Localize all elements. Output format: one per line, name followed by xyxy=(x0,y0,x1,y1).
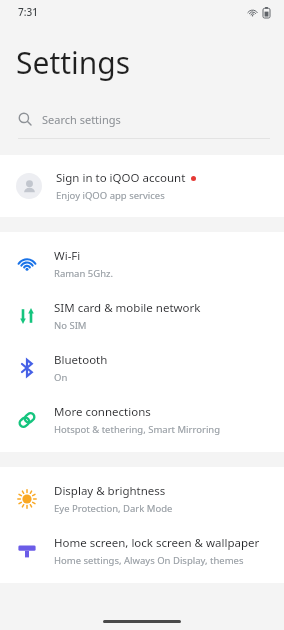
staticText: Display & brightness xyxy=(54,483,166,499)
staticText: Enjoy iQOO app services xyxy=(56,189,165,202)
staticText: Home screen, lock screen & wallpaper xyxy=(54,535,260,551)
staticText: Raman 5Ghz. xyxy=(54,267,114,280)
staticText: Eye Protection, Dark Mode xyxy=(54,502,173,515)
staticText: Home settings, Always On Display, themes xyxy=(54,554,244,567)
staticText: On xyxy=(54,371,68,384)
button[interactable]: Search settings xyxy=(0,100,284,139)
staticText: Settings xyxy=(16,42,131,83)
button[interactable]: Bluetooth xyxy=(0,342,284,394)
button[interactable]: Wi-Fi xyxy=(0,238,284,290)
button[interactable]: Sign in to iQOO account xyxy=(0,155,284,217)
staticText: Hotspot & tethering, Smart Mirroring xyxy=(54,423,221,436)
button[interactable]: More connections xyxy=(0,394,284,446)
staticText: Search settings xyxy=(42,112,121,127)
button[interactable]: SIM card & mobile network xyxy=(0,290,284,342)
staticText: Bluetooth xyxy=(54,352,108,368)
staticText: Sign in to iQOO account xyxy=(56,170,186,186)
button[interactable]: Display & brightness xyxy=(0,473,284,525)
staticText: SIM card & mobile network xyxy=(54,300,201,316)
staticText: No SIM xyxy=(54,319,87,332)
staticText: 7:31 xyxy=(18,5,38,19)
staticText: Wi-Fi xyxy=(54,248,81,264)
staticText: More connections xyxy=(54,404,151,420)
button[interactable]: Home screen, lock screen & wallpaper xyxy=(0,525,284,577)
